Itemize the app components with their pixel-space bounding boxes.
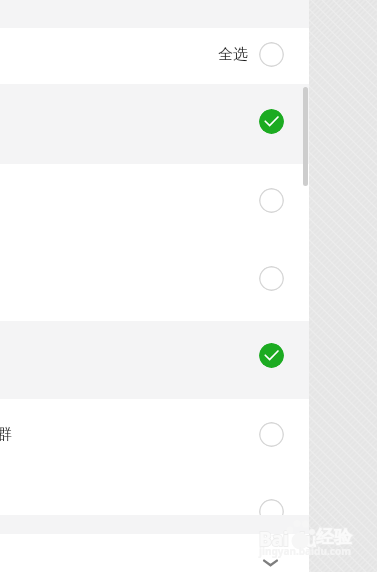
button[interactable]: Selected bbox=[0, 84, 309, 164]
button[interactable]: Expand bbox=[258, 552, 283, 572]
button[interactable]: Selected bbox=[259, 109, 284, 134]
button[interactable]: Not selected bbox=[259, 266, 284, 291]
button[interactable]: 群 bbox=[0, 399, 309, 477]
button[interactable]: Not selected bbox=[259, 499, 284, 515]
staticText: 群 bbox=[0, 425, 12, 444]
button[interactable]: 全选 bbox=[0, 28, 309, 84]
button[interactable]: Selected bbox=[0, 321, 309, 399]
staticText: du bbox=[293, 527, 318, 553]
staticText: jingyan.baidu.com bbox=[259, 544, 351, 558]
button[interactable]: Not selected bbox=[259, 188, 284, 213]
button[interactable]: Not selected bbox=[259, 422, 284, 447]
staticText: Bai bbox=[259, 526, 289, 552]
staticText: 全选 bbox=[218, 45, 248, 64]
button[interactable]: Not selected bbox=[0, 164, 309, 243]
staticText: Bai bbox=[259, 526, 289, 552]
staticText: 经验 bbox=[316, 526, 352, 549]
staticText: 经验 bbox=[316, 526, 352, 549]
button[interactable]: Selected bbox=[259, 343, 284, 368]
staticText: du bbox=[293, 527, 318, 553]
button[interactable]: Not selected bbox=[259, 42, 284, 67]
